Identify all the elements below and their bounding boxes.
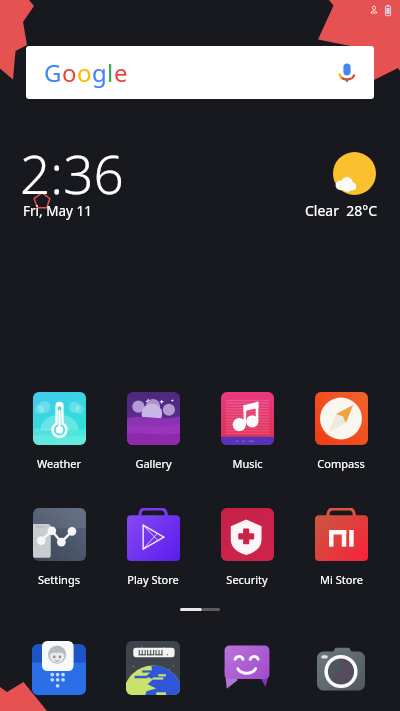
- staticText: Mi Store: [320, 572, 363, 587]
- staticText: Play Store: [127, 572, 179, 587]
- staticText: G: [44, 56, 62, 89]
- staticText: Security: [226, 572, 268, 587]
- staticText: 2:36: [20, 137, 124, 209]
- staticText: o: [62, 56, 77, 89]
- staticText: Compass: [317, 456, 365, 471]
- other: Battery: [383, 4, 393, 17]
- button[interactable]: Compass: [294, 392, 388, 471]
- button[interactable]: Security: [200, 508, 294, 587]
- staticText: l: [107, 56, 114, 89]
- button[interactable]: Browser: [126, 641, 180, 695]
- button[interactable]: Contacts: [32, 641, 86, 695]
- button[interactable]: Mi Store: [294, 508, 388, 587]
- staticText: g: [92, 56, 107, 89]
- other: Voice search: [335, 61, 359, 85]
- button[interactable]: Camera: [314, 641, 368, 695]
- button[interactable]: Weather: [12, 392, 106, 471]
- staticText: e: [114, 56, 128, 89]
- other: Account: [369, 5, 379, 16]
- button[interactable]: Settings: [12, 508, 106, 587]
- button[interactable]: Play Store: [106, 508, 200, 587]
- staticText: Settings: [38, 572, 80, 587]
- button[interactable]: Messages: [220, 641, 274, 695]
- button[interactable]: Music: [200, 392, 294, 471]
- button[interactable]: Gallery: [106, 392, 200, 471]
- staticText: o: [77, 56, 92, 89]
- staticText: Music: [232, 456, 263, 471]
- staticText: Fri, May 11: [23, 202, 92, 220]
- staticText: Gallery: [135, 456, 172, 471]
- staticText: Weather: [37, 456, 81, 471]
- staticText: Clear 28°C: [305, 201, 378, 220]
- button[interactable]: G: [26, 46, 374, 99]
